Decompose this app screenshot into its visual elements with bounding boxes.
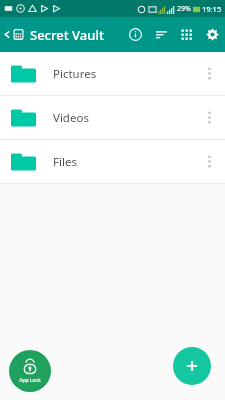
staticText: Pictures (53, 66, 97, 82)
staticText: Secret Vault (30, 26, 104, 44)
button[interactable]: Sort (151, 24, 172, 45)
staticText: 29% (177, 4, 191, 14)
button[interactable]: Back (0, 23, 26, 46)
button[interactable]: Grid view (177, 25, 197, 45)
button[interactable]: Info (125, 24, 146, 45)
button[interactable]: More options (200, 145, 219, 178)
button[interactable]: App Lock (9, 350, 51, 392)
button[interactable]: More options (200, 57, 219, 90)
staticText: Videos (53, 110, 89, 126)
staticText: Files (53, 154, 77, 170)
button[interactable]: Add (173, 347, 211, 385)
staticText: App Lock (19, 377, 41, 384)
button[interactable]: More options (200, 101, 219, 134)
button[interactable]: Files (0, 140, 225, 183)
staticText: 19:15 (202, 4, 222, 14)
button[interactable]: Videos (0, 96, 225, 139)
button[interactable]: Pictures (0, 52, 225, 95)
button[interactable]: Settings (202, 24, 225, 45)
